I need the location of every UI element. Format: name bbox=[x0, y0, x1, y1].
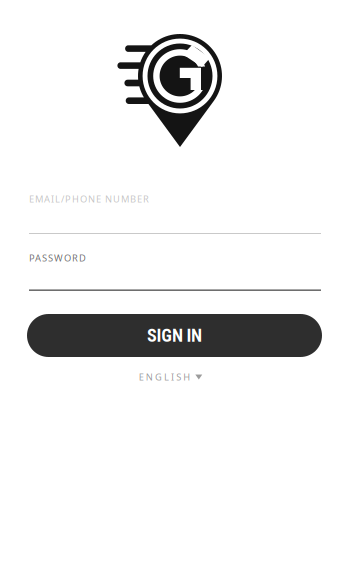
button[interactable]: ENGLISH bbox=[23, 369, 318, 385]
staticText: ENGLISH bbox=[139, 371, 190, 383]
staticText: SIGN IN bbox=[147, 325, 202, 346]
button[interactable]: PASSWORD bbox=[29, 251, 321, 291]
button[interactable]: EMAIL/PHONE NUMBER bbox=[29, 192, 321, 234]
staticText: EMAIL/PHONE NUMBER bbox=[29, 193, 149, 205]
button[interactable]: SIGN IN bbox=[27, 314, 322, 357]
staticText: PASSWORD bbox=[29, 252, 86, 264]
